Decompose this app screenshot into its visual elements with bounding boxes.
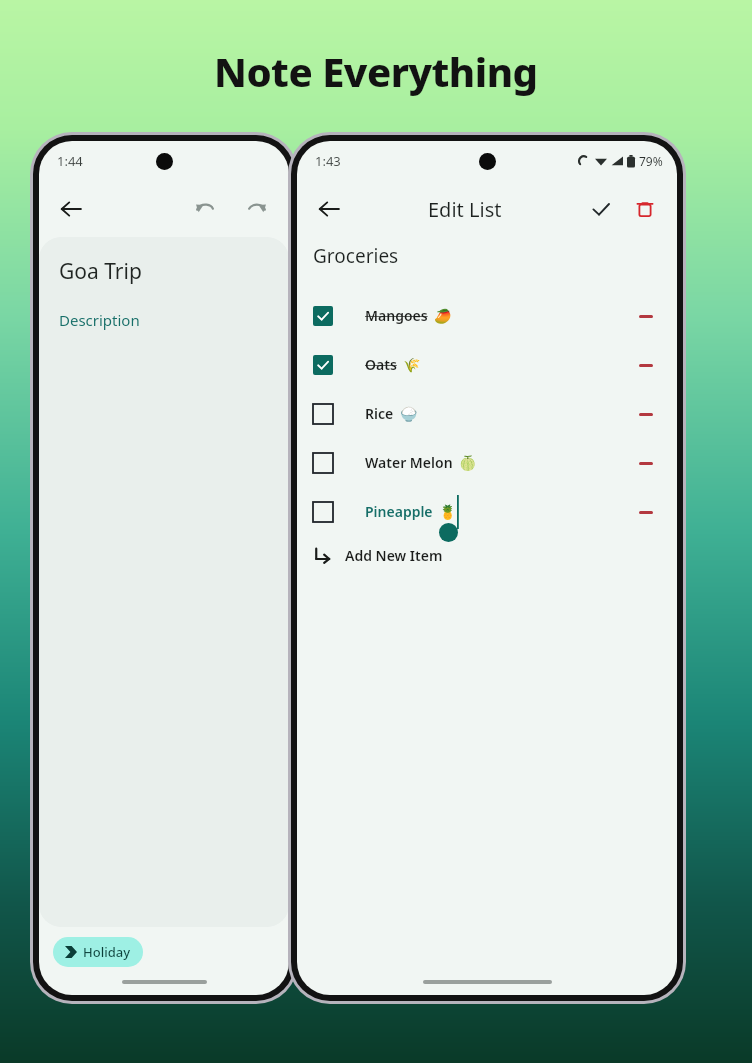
button[interactable]: Toggle Rice bbox=[297, 389, 677, 438]
button[interactable]: Remove Water Melon bbox=[631, 448, 661, 478]
button[interactable]: Toggle Pineapple bbox=[297, 487, 677, 536]
button[interactable]: Remove Mangoes bbox=[631, 301, 661, 331]
staticText: Holiday bbox=[83, 943, 131, 961]
staticText: 🍍 bbox=[439, 504, 457, 520]
staticText: Add New Item bbox=[345, 546, 443, 565]
button[interactable]: Holiday bbox=[53, 937, 143, 967]
staticText: 🌾 bbox=[403, 357, 421, 373]
button[interactable]: Redo bbox=[237, 189, 277, 229]
staticText: 1:44 bbox=[57, 152, 83, 170]
button[interactable]: Goa Trip bbox=[39, 237, 289, 927]
button[interactable]: Remove Oats bbox=[631, 350, 661, 380]
button[interactable]: Toggle Rice bbox=[313, 404, 333, 424]
button[interactable]: Delete bbox=[625, 189, 665, 229]
staticText: Pineapple bbox=[365, 502, 433, 521]
button[interactable]: Undo bbox=[185, 189, 225, 229]
staticText: 🍈 bbox=[459, 455, 477, 471]
staticText: Mangoes bbox=[365, 306, 428, 325]
button[interactable]: Toggle Oats bbox=[297, 340, 677, 389]
button[interactable]: Toggle Water Melon bbox=[313, 453, 333, 473]
button[interactable]: Back bbox=[51, 189, 91, 229]
staticText: 🥭 bbox=[434, 308, 452, 324]
button[interactable]: Toggle Pineapple bbox=[313, 502, 333, 522]
button[interactable]: Remove Rice bbox=[631, 399, 661, 429]
button[interactable]: Back bbox=[309, 189, 349, 229]
button[interactable]: Toggle Mangoes bbox=[297, 291, 677, 340]
button[interactable]: Add New Item bbox=[297, 536, 677, 574]
staticText: 1:43 bbox=[315, 152, 341, 170]
staticText: Rice bbox=[365, 404, 394, 423]
button[interactable]: Toggle Mangoes bbox=[313, 306, 333, 326]
staticText: Groceries bbox=[313, 243, 399, 269]
button[interactable]: Save bbox=[581, 189, 621, 229]
staticText: Water Melon bbox=[365, 453, 453, 472]
staticText: Note Everything bbox=[214, 44, 538, 98]
staticText: Edit List bbox=[428, 196, 502, 223]
staticText: 🍚 bbox=[400, 406, 418, 422]
button[interactable]: Toggle Oats bbox=[313, 355, 333, 375]
button[interactable]: Remove Pineapple bbox=[631, 497, 661, 527]
staticText: Oats bbox=[365, 355, 397, 374]
staticText: 79% bbox=[639, 153, 663, 169]
button[interactable]: Toggle Water Melon bbox=[297, 438, 677, 487]
staticText: Goa Trip bbox=[59, 257, 142, 286]
staticText: Description bbox=[59, 310, 140, 330]
